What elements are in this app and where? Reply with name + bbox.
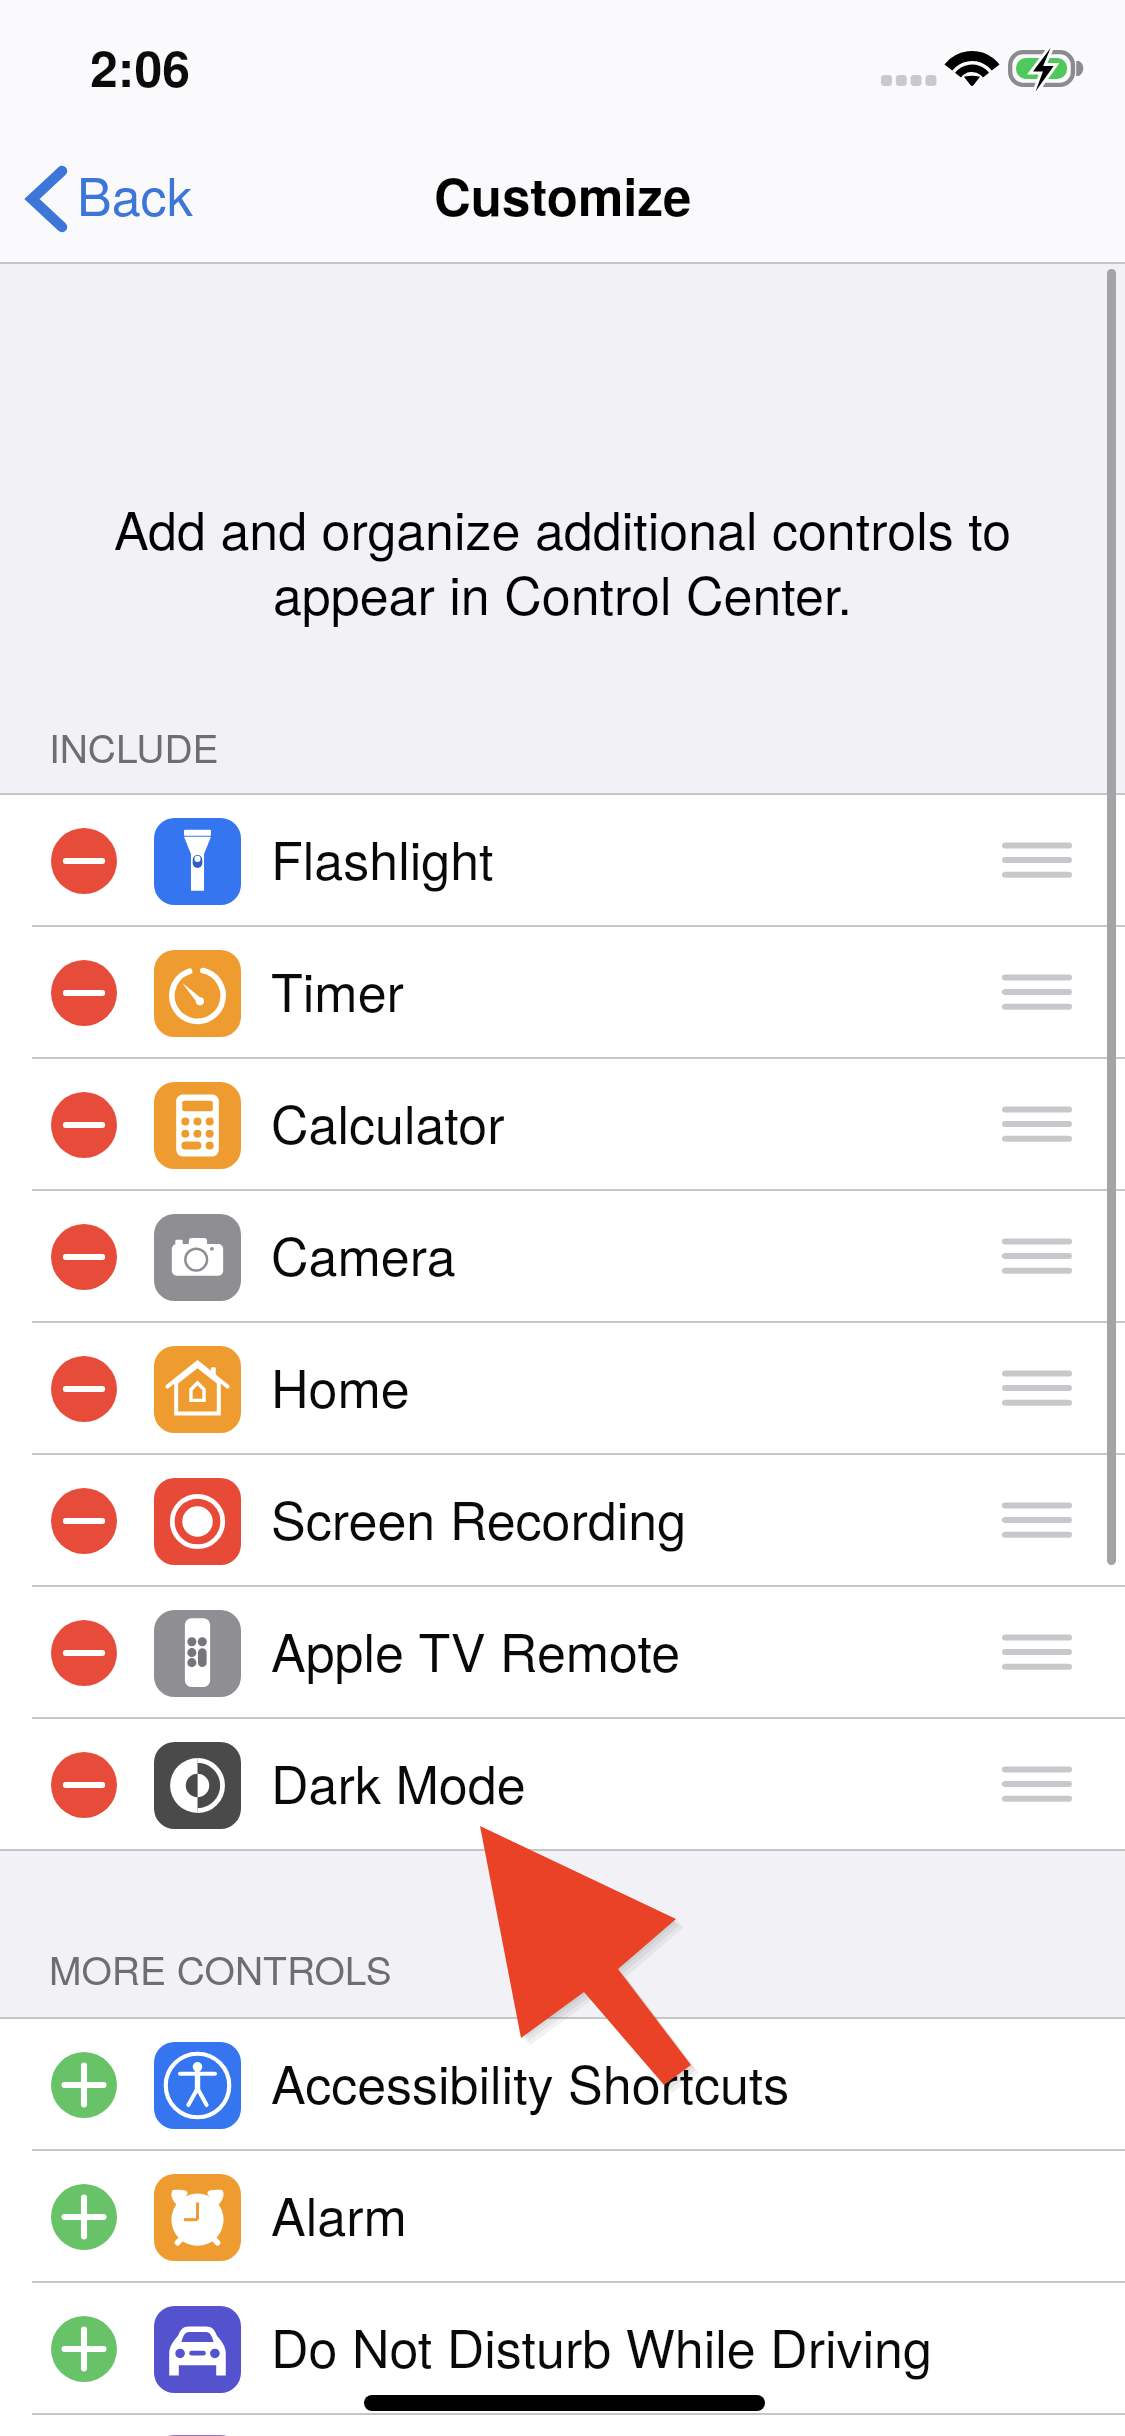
- staticText: Alarm: [271, 2176, 407, 2250]
- button[interactable]: Reorder Flashlight: [1005, 844, 1069, 876]
- button[interactable]: Add Do Not Disturb While Driving: [0, 2283, 1125, 2415]
- button[interactable]: Add Alarm: [51, 2184, 117, 2250]
- button[interactable]: Remove Calculator: [51, 1092, 117, 1158]
- button[interactable]: Reorder Timer: [1005, 976, 1069, 1008]
- button[interactable]: Remove Apple TV Remote: [51, 1620, 117, 1686]
- button[interactable]: Remove Timer: [0, 927, 1125, 1059]
- button[interactable]: Back: [8, 150, 215, 248]
- button[interactable]: Remove Camera: [0, 1191, 1125, 1323]
- button[interactable]: Add Accessibility Shortcuts: [51, 2052, 117, 2118]
- button[interactable]: Add Accessibility Shortcuts: [0, 2019, 1125, 2151]
- button[interactable]: Guided Access: [154, 2435, 241, 2436]
- button[interactable]: Remove Home: [51, 1356, 117, 1422]
- staticText: Camera: [271, 1216, 456, 1290]
- button[interactable]: Remove Screen Recording: [51, 1488, 117, 1554]
- staticText: Customize: [434, 159, 692, 232]
- button[interactable]: Reorder Apple TV Remote: [1005, 1636, 1069, 1668]
- button[interactable]: Remove Flashlight: [0, 795, 1125, 927]
- staticText: Screen Recording: [271, 1480, 687, 1554]
- staticText: Timer: [271, 952, 404, 1026]
- staticText: Back: [77, 156, 193, 230]
- staticText: MORE CONTROLS: [49, 1940, 392, 1996]
- button[interactable]: Add Alarm: [0, 2151, 1125, 2283]
- button[interactable]: Remove Dark Mode: [0, 1719, 1125, 1851]
- staticText: Accessibility Shortcuts: [271, 2044, 790, 2118]
- button[interactable]: Remove Dark Mode: [51, 1752, 117, 1818]
- staticText: Flashlight: [271, 820, 494, 894]
- button[interactable]: Remove Screen Recording: [0, 1455, 1125, 1587]
- staticText: Home: [271, 1348, 410, 1422]
- staticText: Do Not Disturb While Driving: [271, 2308, 932, 2382]
- button[interactable]: Remove Flashlight: [51, 828, 117, 894]
- button[interactable]: Reorder Home: [1005, 1372, 1069, 1404]
- staticText: Calculator: [271, 1084, 505, 1158]
- button[interactable]: Add Do Not Disturb While Driving: [51, 2316, 117, 2382]
- button[interactable]: Reorder Calculator: [1005, 1108, 1069, 1140]
- staticText: Add and organize additional controls to …: [98, 490, 1027, 630]
- staticText: Apple TV Remote: [271, 1612, 681, 1686]
- button[interactable]: Remove Timer: [51, 960, 117, 1026]
- button[interactable]: Remove Calculator: [0, 1059, 1125, 1191]
- button[interactable]: Reorder Camera: [1005, 1240, 1069, 1272]
- button[interactable]: Remove Apple TV Remote: [0, 1587, 1125, 1719]
- staticText: INCLUDE: [49, 718, 219, 774]
- button[interactable]: Remove Camera: [51, 1224, 117, 1290]
- button[interactable]: Reorder Screen Recording: [1005, 1504, 1069, 1536]
- button[interactable]: Remove Home: [0, 1323, 1125, 1455]
- staticText: Dark Mode: [271, 1744, 526, 1818]
- button[interactable]: Reorder Dark Mode: [1005, 1768, 1069, 1800]
- staticText: 2:06: [90, 31, 191, 103]
